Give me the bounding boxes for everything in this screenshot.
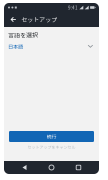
staticText: 日本語 [8,43,23,50]
button[interactable]: Recents [72,162,85,173]
button[interactable]: Back [18,162,31,173]
button[interactable]: 戻る [8,14,18,25]
button[interactable]: 日本語 [4,39,99,53]
button[interactable]: Home [45,162,58,173]
staticText: 9:41 [68,4,78,11]
staticText: 言語を選択 [8,30,38,39]
button[interactable]: 続行 [9,131,94,142]
button[interactable]: セットアップをキャンセル [4,142,99,152]
staticText: セットアップ [21,15,57,24]
staticText: 続行 [46,133,56,140]
staticText: セットアップをキャンセル [27,144,75,150]
